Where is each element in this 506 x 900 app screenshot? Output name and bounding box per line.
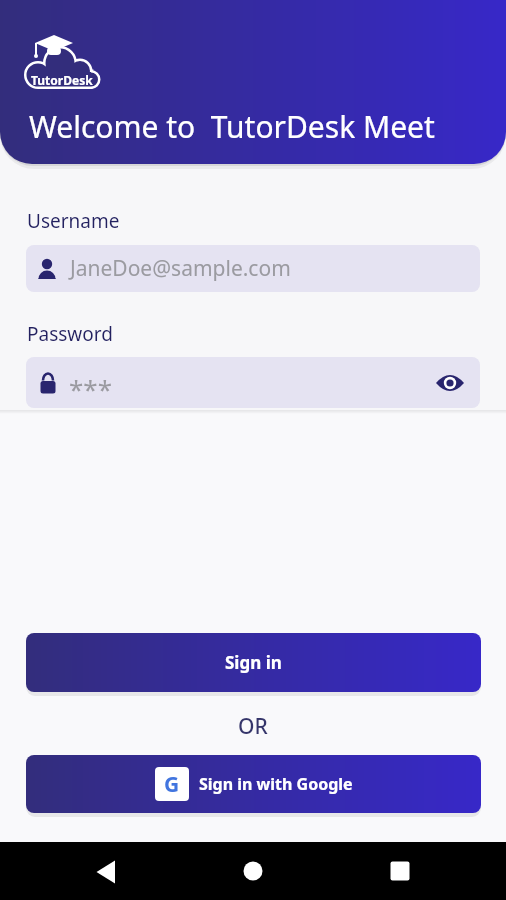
button[interactable] bbox=[428, 357, 472, 408]
staticText: TutorDesk bbox=[31, 72, 93, 88]
staticText: Password bbox=[27, 321, 113, 347]
staticText: Sign in with Google bbox=[199, 773, 353, 795]
button[interactable] bbox=[88, 854, 124, 890]
staticText: OR bbox=[238, 712, 268, 741]
button[interactable] bbox=[235, 853, 271, 889]
staticText: G bbox=[164, 770, 180, 799]
staticText: *** bbox=[69, 371, 112, 406]
button[interactable]: JaneDoe@sample.com bbox=[26, 245, 480, 292]
staticText: JaneDoe@sample.com bbox=[70, 254, 291, 283]
staticText: Welcome to TutorDesk Meet bbox=[29, 106, 435, 147]
button[interactable]: Sign in bbox=[26, 633, 481, 692]
staticText: Sign in bbox=[225, 651, 282, 674]
staticText: Username bbox=[27, 208, 120, 234]
button[interactable]: G bbox=[26, 755, 481, 813]
button[interactable]: *** bbox=[26, 357, 480, 408]
button[interactable] bbox=[382, 853, 418, 889]
